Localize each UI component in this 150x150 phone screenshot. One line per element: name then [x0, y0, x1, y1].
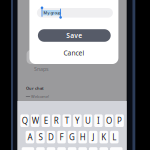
staticText: P: [117, 115, 122, 126]
button[interactable]: I: [94, 114, 103, 127]
staticText: Our chat: [26, 86, 44, 91]
button[interactable]: Q: [20, 114, 29, 127]
staticText: I: [97, 115, 100, 126]
staticText: K: [101, 132, 106, 142]
staticText: G: [69, 132, 75, 142]
staticText: S: [38, 132, 42, 142]
staticText: Welcome!: [31, 94, 49, 99]
button[interactable]: F: [57, 131, 66, 143]
button[interactable]: G: [68, 131, 76, 143]
button[interactable]: A: [26, 131, 34, 143]
staticText: A: [27, 132, 32, 142]
staticText: L: [112, 132, 116, 142]
button[interactable]: D: [47, 131, 55, 143]
button[interactable]: V: [68, 147, 76, 150]
staticText: F: [60, 132, 64, 142]
button[interactable]: Delete: [110, 147, 122, 150]
staticText: T: [65, 115, 69, 126]
staticText: W: [32, 115, 39, 126]
staticText: Y: [75, 115, 80, 126]
staticText: H: [80, 132, 86, 142]
button[interactable]: Z: [36, 147, 45, 150]
button[interactable]: Y: [73, 114, 82, 127]
button[interactable]: N: [89, 147, 97, 150]
button[interactable]: Cancel: [38, 47, 110, 58]
button[interactable]: K: [99, 131, 108, 143]
staticText: Snaps: [34, 65, 49, 73]
button[interactable]: J: [89, 131, 97, 143]
staticText: U: [85, 115, 91, 126]
staticText: J: [92, 132, 94, 142]
staticText: My group: [43, 10, 60, 15]
button[interactable]: E: [41, 114, 50, 127]
button[interactable]: S: [36, 131, 45, 143]
button[interactable]: X: [47, 147, 55, 150]
staticText: R: [54, 115, 59, 126]
button[interactable]: B: [78, 147, 87, 150]
staticText: Q: [22, 115, 28, 126]
button[interactable]: H: [78, 131, 87, 143]
staticText: Save: [66, 31, 82, 40]
button[interactable]: R: [52, 114, 61, 127]
button[interactable]: T: [63, 114, 71, 127]
staticText: O: [106, 115, 112, 126]
button[interactable]: M: [99, 147, 108, 150]
button[interactable]: C: [57, 147, 66, 150]
button[interactable]: O: [105, 114, 113, 127]
staticText: Cancel: [64, 48, 85, 57]
button[interactable]: P: [115, 114, 124, 127]
button[interactable]: U: [84, 114, 92, 127]
button[interactable]: Save: [38, 29, 111, 42]
button[interactable]: Shift: [22, 147, 34, 150]
staticText: D: [48, 132, 54, 142]
button[interactable]: W: [31, 114, 39, 127]
staticText: E: [44, 115, 48, 126]
button[interactable]: L: [110, 131, 119, 143]
